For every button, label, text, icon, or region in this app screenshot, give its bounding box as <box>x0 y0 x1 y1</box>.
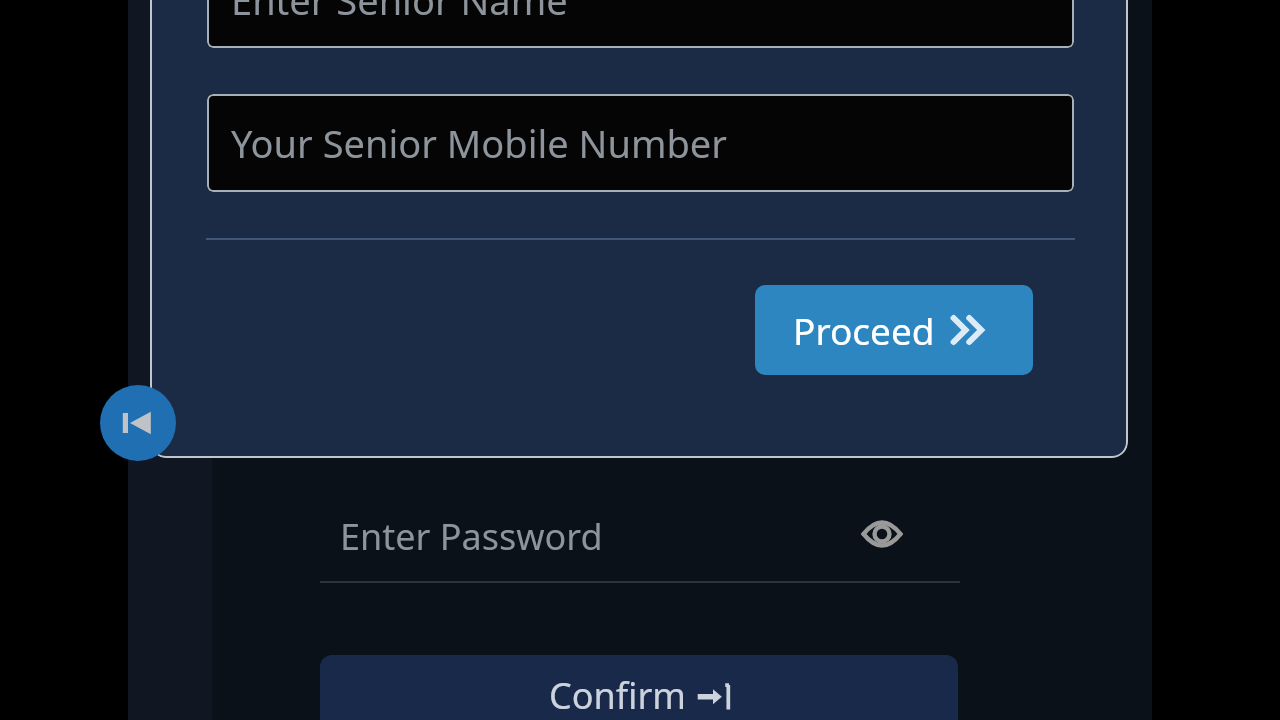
button[interactable]: Show password <box>854 506 910 562</box>
staticText: Proceed <box>793 305 935 355</box>
button[interactable]: Confirm <box>320 655 958 720</box>
button[interactable]: Proceed <box>755 285 1033 375</box>
button[interactable]: Enter Senior Name <box>207 0 1074 48</box>
staticText: Enter Password <box>340 512 603 561</box>
staticText: Confirm <box>549 671 686 720</box>
staticText: Enter Senior Name <box>231 0 568 26</box>
button[interactable]: Your Senior Mobile Number <box>207 94 1074 192</box>
button[interactable]: Previous <box>100 385 176 461</box>
staticText: Your Senior Mobile Number <box>231 117 727 169</box>
